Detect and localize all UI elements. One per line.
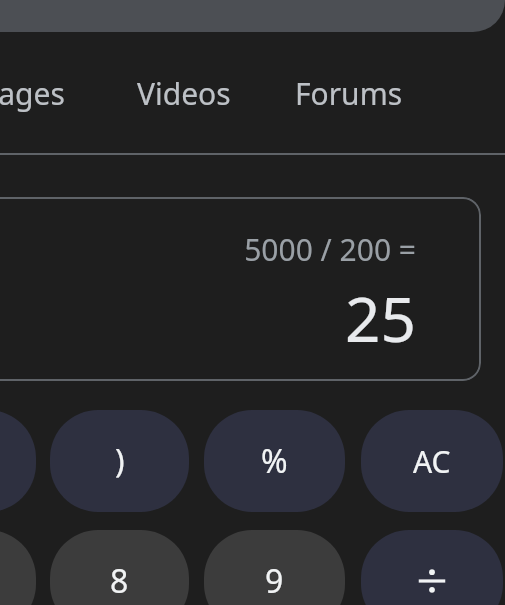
staticText: AC [413, 441, 451, 482]
button[interactable]: Forums [289, 73, 409, 114]
button[interactable]: AC [361, 410, 503, 512]
button[interactable]: 9 [204, 530, 345, 605]
button[interactable]: ( [0, 410, 36, 512]
button[interactable]: 8 [50, 530, 189, 605]
button[interactable]: Videos [131, 73, 237, 114]
button[interactable]: ) [50, 410, 189, 512]
button[interactable]: % [204, 410, 345, 512]
staticText: 8 [110, 559, 129, 603]
staticText: Forums [295, 73, 403, 114]
staticText: Images [0, 73, 65, 114]
staticText: 9 [265, 559, 284, 603]
staticText: 25 [345, 276, 416, 360]
button[interactable]: Divide [361, 530, 503, 605]
staticText: % [261, 439, 288, 483]
button[interactable]: 7 [0, 530, 36, 605]
button[interactable]: 5000 / 200 = [0, 197, 481, 381]
staticText: 5000 / 200 = [244, 229, 416, 270]
staticText: Videos [137, 73, 231, 114]
button[interactable]: Images [0, 73, 71, 114]
staticText: ) [115, 439, 125, 483]
